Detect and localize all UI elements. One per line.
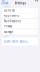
staticText: General — [4, 9, 15, 12]
staticText: Back — [3, 1, 8, 5]
staticText: Storage — [4, 30, 14, 34]
button[interactable]: Storage — [2, 30, 38, 34]
staticText: Notifications — [4, 19, 21, 23]
staticText: ABOUT — [4, 35, 9, 37]
button[interactable]: Privacy — [2, 24, 38, 29]
button[interactable]: Learn more about privacy — [2, 39, 38, 44]
staticText: ACCOUNT — [4, 6, 11, 8]
staticText: Learn more about privacy — [4, 40, 28, 43]
staticText: Appearance — [4, 14, 20, 17]
button[interactable]: Notifications — [2, 19, 38, 24]
button[interactable]: General — [2, 8, 38, 13]
button[interactable]: Appearance — [2, 13, 38, 18]
staticText: 9:41 — [2, 0, 5, 2]
staticText: Privacy — [4, 24, 12, 28]
button[interactable]: Back — [0, 2, 9, 5]
staticText: Settings — [14, 1, 25, 5]
